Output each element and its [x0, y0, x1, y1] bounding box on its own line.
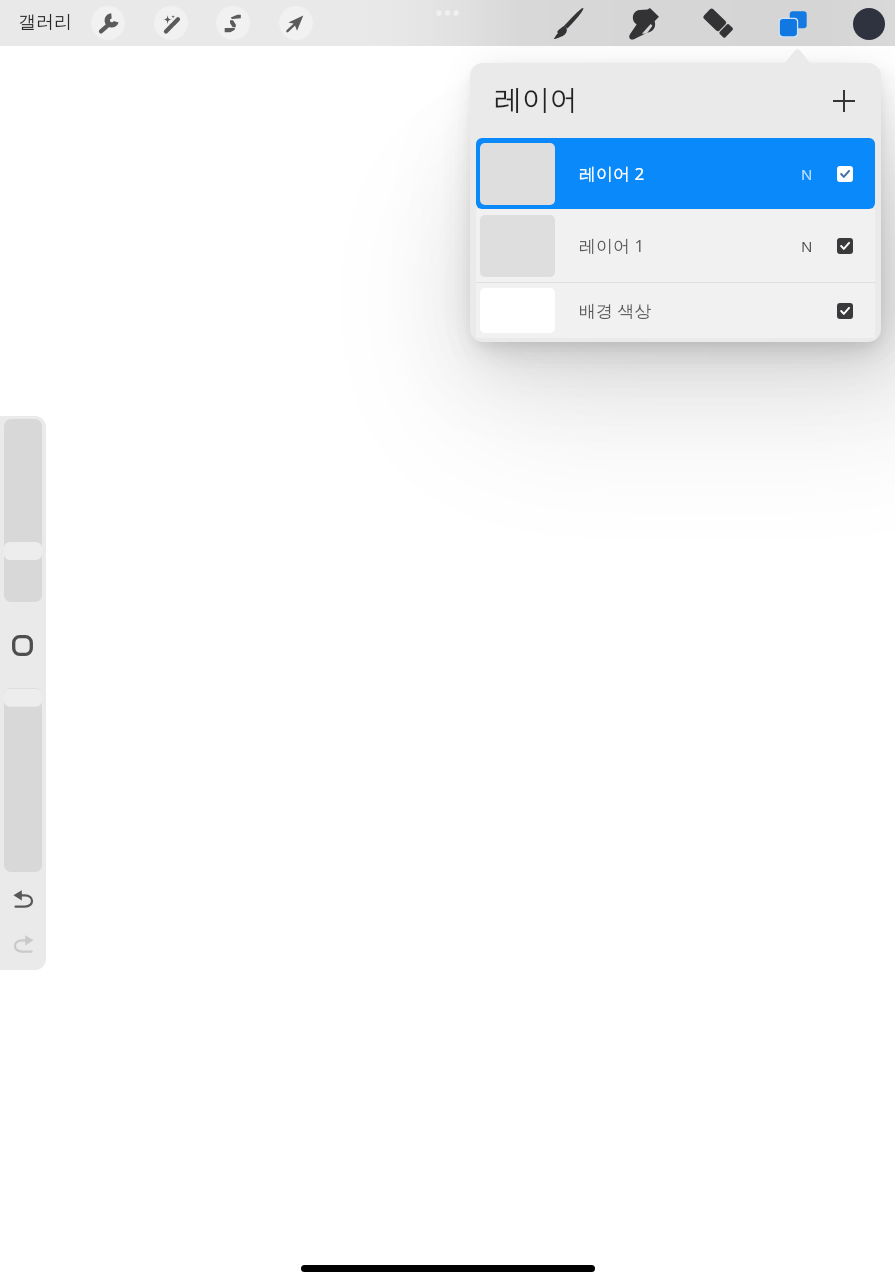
button[interactable]: 레이어 2 — [476, 138, 875, 209]
staticText: N — [801, 164, 813, 184]
button[interactable]: Layer visible — [837, 303, 853, 319]
staticText: 레이어 1 — [579, 234, 645, 257]
button[interactable]: Redo — [6, 927, 40, 961]
button[interactable]: Add layer — [822, 79, 866, 123]
button[interactable]: Layer visible — [837, 238, 853, 254]
button[interactable] — [4, 419, 42, 602]
button[interactable]: Eraser — [695, 0, 741, 46]
button[interactable]: Layers — [770, 0, 816, 46]
button[interactable]: Selection — [216, 6, 250, 40]
button[interactable]: Adjustments — [91, 6, 125, 40]
staticText: N — [801, 236, 813, 256]
button[interactable]: Adjustments effects — [154, 6, 188, 40]
button[interactable]: 레이어 1 — [476, 209, 875, 282]
button[interactable] — [4, 688, 42, 872]
staticText: 레이어 2 — [579, 162, 645, 185]
staticText: 배경 색상 — [579, 299, 652, 322]
button[interactable]: Color — [853, 8, 885, 40]
button[interactable]: Layer visible — [837, 166, 853, 182]
button[interactable]: Undo — [6, 882, 40, 916]
button[interactable]: 배경 색상 — [476, 283, 875, 338]
button[interactable]: Transform — [279, 6, 313, 40]
staticText: 레이어 — [494, 82, 578, 117]
button[interactable]: More — [430, 0, 464, 36]
button[interactable]: Modify — [12, 635, 33, 656]
button[interactable]: Paint brush — [546, 0, 592, 46]
button[interactable]: Smudge — [621, 0, 667, 46]
button[interactable]: 갤러리 — [18, 11, 72, 34]
